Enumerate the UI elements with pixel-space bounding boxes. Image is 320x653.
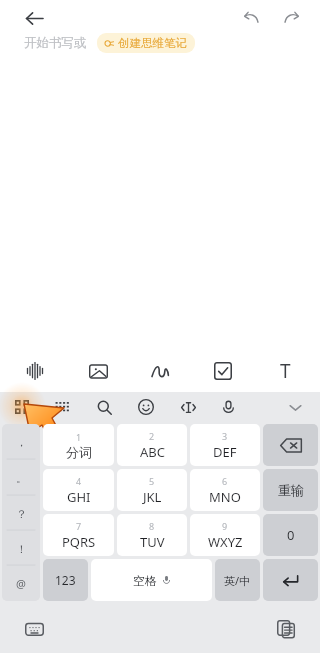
staticText: 英/中 bbox=[224, 573, 251, 588]
button[interactable]: 1 bbox=[43, 424, 114, 466]
button[interactable]: 5 bbox=[117, 469, 187, 511]
button[interactable]: 3 bbox=[190, 424, 260, 466]
staticText: 开始书写或 bbox=[24, 35, 87, 51]
staticText: ？ bbox=[16, 507, 27, 521]
staticText: PQRS bbox=[62, 533, 96, 551]
staticText: GHI bbox=[67, 488, 91, 506]
staticText: MNO bbox=[209, 488, 241, 506]
button[interactable]: 空格 bbox=[91, 559, 212, 601]
staticText: 7 bbox=[76, 520, 82, 532]
staticText: 8 bbox=[149, 520, 155, 532]
staticText: WXYZ bbox=[208, 533, 243, 551]
button[interactable]: Switch keyboard bbox=[18, 613, 50, 645]
button[interactable]: Voice input bbox=[213, 392, 243, 422]
button[interactable]: 7 bbox=[43, 514, 114, 556]
button[interactable]: Keyboard layouts bbox=[7, 392, 37, 422]
staticText: 。 bbox=[16, 471, 27, 485]
staticText: 空格 bbox=[133, 573, 157, 588]
button[interactable]: 6 bbox=[190, 469, 260, 511]
button[interactable]: Redo bbox=[276, 3, 306, 33]
button[interactable]: 4 bbox=[43, 469, 114, 511]
button[interactable]: ， bbox=[2, 424, 40, 460]
staticText: TUV bbox=[140, 533, 165, 551]
staticText: 5 bbox=[149, 475, 155, 487]
button[interactable]: 创建思维笔记 bbox=[97, 33, 195, 53]
button[interactable]: 。 bbox=[2, 460, 40, 496]
staticText: ， bbox=[16, 435, 27, 449]
button[interactable]: 123 bbox=[43, 559, 88, 601]
button[interactable]: Search bbox=[89, 392, 119, 422]
button[interactable]: 重输 bbox=[263, 469, 318, 511]
button[interactable]: Cursor controls bbox=[173, 392, 203, 422]
staticText: 4 bbox=[76, 475, 82, 487]
button[interactable]: 2 bbox=[117, 424, 187, 466]
button[interactable]: Clipboard bbox=[270, 613, 302, 645]
staticText: 重输 bbox=[278, 482, 304, 498]
button[interactable]: Hide keyboard bbox=[280, 392, 310, 422]
button[interactable]: @ bbox=[2, 566, 40, 601]
button[interactable]: Draw bbox=[139, 350, 181, 392]
button[interactable]: Delete bbox=[263, 424, 318, 466]
button[interactable]: Emoji bbox=[131, 392, 161, 422]
button[interactable]: ？ bbox=[2, 496, 40, 531]
staticText: @ bbox=[16, 576, 26, 591]
staticText: ！ bbox=[16, 542, 27, 556]
button[interactable]: Back bbox=[18, 2, 50, 34]
button[interactable]: Undo bbox=[236, 3, 266, 33]
button[interactable]: 9 bbox=[190, 514, 260, 556]
staticText: JKL bbox=[143, 488, 162, 506]
staticText: T bbox=[280, 358, 291, 384]
staticText: 2 bbox=[149, 430, 155, 442]
button[interactable]: Checklist bbox=[202, 350, 244, 392]
button[interactable]: 8 bbox=[117, 514, 187, 556]
button[interactable]: Text style bbox=[264, 350, 306, 392]
staticText: 1 bbox=[76, 431, 82, 443]
staticText: 123 bbox=[55, 572, 76, 588]
button[interactable]: Audio bbox=[14, 350, 56, 392]
staticText: DEF bbox=[213, 443, 237, 461]
button[interactable]: 0 bbox=[263, 514, 318, 556]
button[interactable]: Handwriting bbox=[47, 392, 77, 422]
staticText: 0 bbox=[287, 526, 295, 544]
staticText: 9 bbox=[222, 520, 228, 532]
button[interactable]: ！ bbox=[2, 531, 40, 566]
staticText: 分词 bbox=[66, 444, 92, 460]
button[interactable]: 英/中 bbox=[215, 559, 260, 601]
staticText: 6 bbox=[222, 475, 228, 487]
staticText: ABC bbox=[140, 443, 165, 461]
button[interactable]: Enter bbox=[263, 559, 318, 601]
staticText: 创建思维笔记 bbox=[118, 36, 187, 50]
button[interactable]: Image bbox=[77, 350, 119, 392]
staticText: 3 bbox=[222, 430, 228, 442]
